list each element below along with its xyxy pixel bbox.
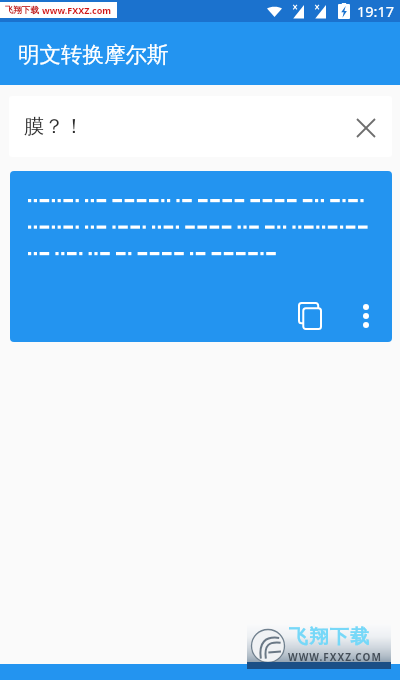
- button[interactable]: 膜？！: [9, 96, 392, 157]
- button[interactable]: Clear text: [346, 108, 386, 148]
- staticText: 明文转换摩尔斯: [18, 41, 169, 68]
- button[interactable]: Copy: [10, 171, 392, 342]
- button[interactable]: Copy: [286, 292, 334, 340]
- staticText: www.FXXZ.com: [42, 4, 112, 16]
- staticText: WWW.FXXZ.COM: [288, 650, 382, 664]
- staticText: 膜？！: [24, 114, 84, 139]
- staticText: 19:17: [357, 1, 395, 21]
- button[interactable]: More options: [346, 296, 386, 336]
- staticText: 飞翔下载: [5, 5, 39, 16]
- staticText: 飞翔下载: [288, 625, 370, 649]
